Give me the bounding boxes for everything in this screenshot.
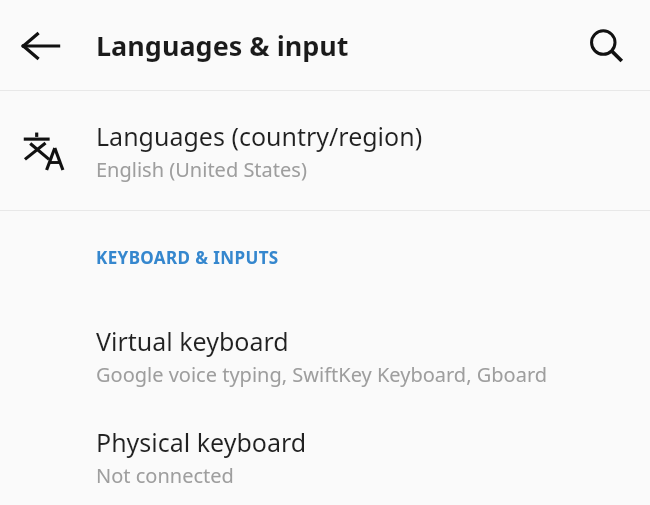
button[interactable]: Virtual keyboard — [0, 304, 650, 408]
staticText: English (United States) — [96, 156, 307, 183]
staticText: Google voice typing, SwiftKey Keyboard, … — [96, 361, 548, 388]
staticText: KEYBOARD & INPUTS — [96, 246, 279, 269]
staticText: Virtual keyboard — [96, 324, 289, 358]
button[interactable]: Search — [574, 14, 638, 78]
button[interactable]: Back — [6, 11, 76, 81]
staticText: Languages (country/region) — [96, 119, 423, 153]
staticText: Languages & input — [96, 27, 349, 64]
staticText: Not connected — [96, 462, 234, 489]
staticText: Physical keyboard — [96, 425, 307, 459]
button[interactable]: Physical keyboard — [0, 408, 650, 505]
button[interactable]: Languages (country/region) — [0, 91, 650, 211]
